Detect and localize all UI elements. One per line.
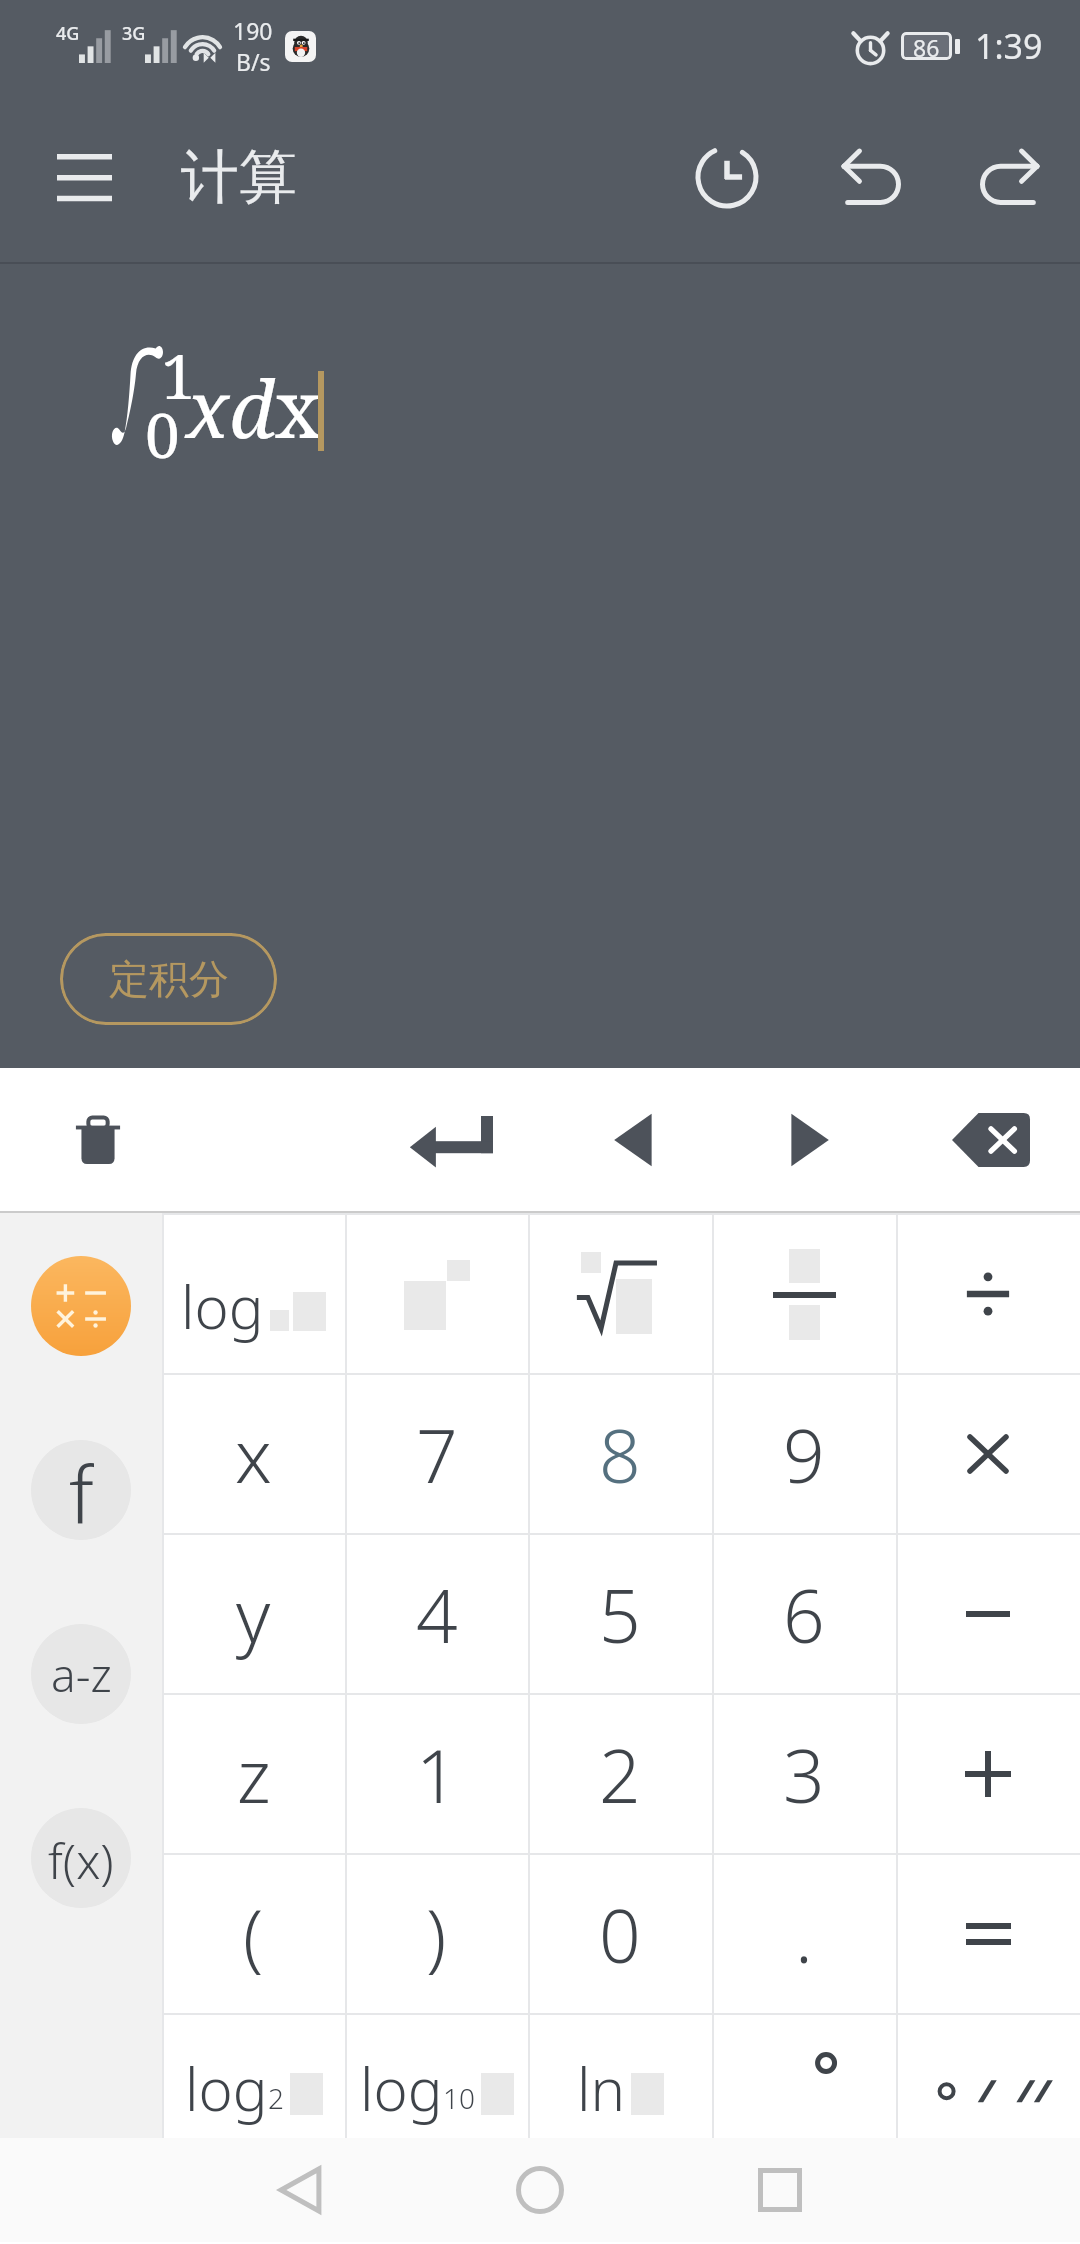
button[interactable]: f <box>31 1440 131 1540</box>
staticText: 4G <box>56 21 80 46</box>
staticText: 8 <box>599 1405 641 1504</box>
button[interactable]: log <box>162 1215 345 1373</box>
button[interactable]: Home <box>485 2138 595 2242</box>
button[interactable] <box>896 1855 1080 2013</box>
staticText: f <box>69 1440 94 1538</box>
button[interactable] <box>896 1375 1080 1533</box>
button[interactable]: ) <box>345 1855 528 2013</box>
button[interactable]: ( <box>162 1855 345 2013</box>
staticText: 2 <box>599 1725 641 1824</box>
button[interactable]: Back <box>245 2138 355 2242</box>
button[interactable] <box>712 2015 896 2138</box>
staticText: a-z <box>51 1643 112 1706</box>
staticText: 3G <box>122 21 146 46</box>
button[interactable]: a-z <box>31 1624 131 1724</box>
button[interactable] <box>345 1215 528 1373</box>
staticText: x <box>275 354 321 462</box>
button[interactable]: log <box>345 2015 528 2138</box>
staticText: 1:39 <box>975 23 1043 69</box>
button[interactable]: z <box>162 1695 345 1853</box>
button[interactable]: Clear <box>52 1094 144 1186</box>
button[interactable]: Move left <box>588 1094 680 1186</box>
button[interactable]: 9 <box>712 1375 896 1533</box>
staticText: y <box>236 1565 271 1664</box>
staticText: 10 <box>443 2079 475 2117</box>
button[interactable] <box>31 1256 131 1356</box>
button[interactable]: Menu <box>29 122 139 232</box>
staticText: 1 <box>161 333 196 417</box>
staticText: 0 <box>145 392 180 476</box>
button[interactable]: 1 <box>345 1695 528 1853</box>
staticText: 计算 <box>181 141 297 214</box>
staticText: 6 <box>783 1565 825 1664</box>
staticText: ( <box>243 1885 264 1984</box>
staticText: 2 <box>268 2079 284 2117</box>
staticText: 9 <box>783 1405 825 1504</box>
button[interactable]: 4 <box>345 1535 528 1693</box>
button[interactable] <box>896 1695 1080 1853</box>
button[interactable]: 定积分 <box>60 933 277 1025</box>
button[interactable]: . <box>712 1855 896 2013</box>
button[interactable]: 8 <box>528 1375 712 1533</box>
button[interactable]: Move right <box>763 1094 855 1186</box>
staticText: ) <box>426 1885 447 1984</box>
staticText: . <box>795 1885 813 1984</box>
button[interactable]: Recents <box>725 2138 835 2242</box>
button[interactable] <box>896 1215 1080 1373</box>
staticText: 5 <box>599 1565 641 1664</box>
staticText: ln <box>577 2049 625 2128</box>
staticText: 定积分 <box>109 954 229 1004</box>
button[interactable]: x <box>162 1375 345 1533</box>
staticText: 190 <box>233 15 273 46</box>
button[interactable]: Enter <box>405 1094 497 1186</box>
button[interactable]: Backspace <box>945 1094 1037 1186</box>
button[interactable]: f(x) <box>31 1808 131 1908</box>
button[interactable]: ln <box>528 2015 712 2138</box>
button[interactable]: 2 <box>528 1695 712 1853</box>
button[interactable]: Undo <box>805 112 935 242</box>
button[interactable]: 5 <box>528 1535 712 1693</box>
staticText: 86 <box>913 32 940 60</box>
staticText: 1 <box>416 1725 458 1824</box>
button[interactable]: Redo <box>946 112 1076 242</box>
button[interactable] <box>896 2015 1080 2138</box>
button[interactable] <box>528 1215 712 1373</box>
staticText: 0 <box>599 1885 641 1984</box>
button[interactable] <box>712 1215 896 1373</box>
staticText: log <box>360 2049 443 2128</box>
button[interactable]: 7 <box>345 1375 528 1533</box>
button[interactable] <box>896 1535 1080 1693</box>
button[interactable]: History <box>662 112 792 242</box>
staticText: B/s <box>236 46 271 77</box>
button[interactable]: 3 <box>712 1695 896 1853</box>
staticText: 4 <box>416 1565 458 1664</box>
staticText: x <box>235 1405 272 1504</box>
button[interactable]: y <box>162 1535 345 1693</box>
staticText: xd <box>186 354 275 462</box>
button[interactable]: 0 <box>528 1855 712 2013</box>
staticText: z <box>237 1725 271 1824</box>
button[interactable]: log <box>162 2015 345 2138</box>
staticText: f(x) <box>48 1828 114 1893</box>
staticText: log <box>181 1267 264 1346</box>
button[interactable]: 6 <box>712 1535 896 1693</box>
staticText: log <box>185 2049 268 2128</box>
staticText: 7 <box>416 1405 458 1504</box>
staticText: 3 <box>783 1725 825 1824</box>
